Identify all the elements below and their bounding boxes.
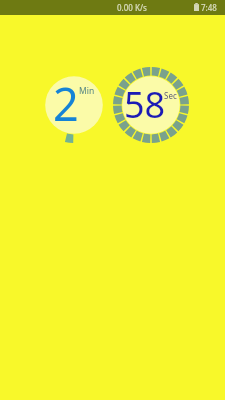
staticText: Sec <box>164 90 177 101</box>
staticText: Min <box>79 85 95 97</box>
staticText: 2 <box>53 73 79 134</box>
staticText: 7:48 <box>201 2 217 13</box>
button[interactable]: Seconds: 58 <box>113 67 189 143</box>
other: Battery full <box>194 3 199 11</box>
staticText: 58 <box>124 80 166 129</box>
button[interactable]: Minutes: 2 <box>36 67 112 143</box>
staticText: 0.00 K/s <box>117 2 148 13</box>
